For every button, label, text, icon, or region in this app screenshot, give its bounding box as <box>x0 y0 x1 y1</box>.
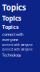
staticText: Topics <box>2 14 21 22</box>
staticText: connect with everyone <box>2 48 33 51</box>
staticText: Technology <box>2 52 21 58</box>
staticText: Topics <box>2 2 26 13</box>
staticText: connect with everyone <box>2 32 23 42</box>
staticText: Topics <box>2 23 19 31</box>
staticText: connect with everyone <box>2 43 33 47</box>
